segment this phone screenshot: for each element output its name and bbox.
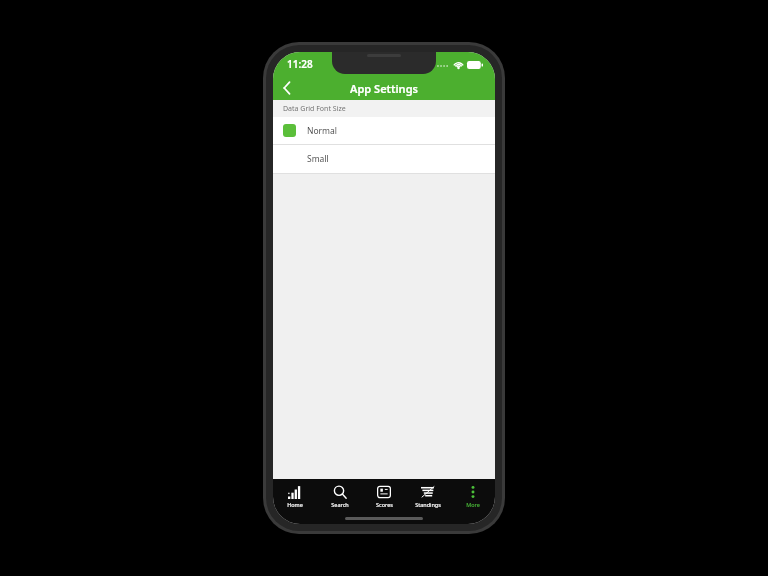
staticText: Search [331,501,349,508]
button[interactable]: Home [273,479,317,513]
staticText: Standings [415,501,441,508]
button[interactable]: Standings [406,479,450,513]
button[interactable]: Scores [362,479,406,513]
staticText: Small [307,153,329,165]
button[interactable]: Small [273,145,495,173]
button[interactable]: More [451,479,495,513]
staticText: Home [287,501,303,508]
staticText: Normal [307,125,338,137]
staticText: Scores [376,501,393,508]
button[interactable]: Back [273,76,301,100]
staticText: 11:28 [287,57,313,71]
staticText: Data Grid Font Size [283,104,346,114]
button[interactable]: Normal [273,117,495,144]
staticText: More [466,501,480,508]
button[interactable]: Search [318,479,362,513]
staticText: App Settings [350,81,418,96]
